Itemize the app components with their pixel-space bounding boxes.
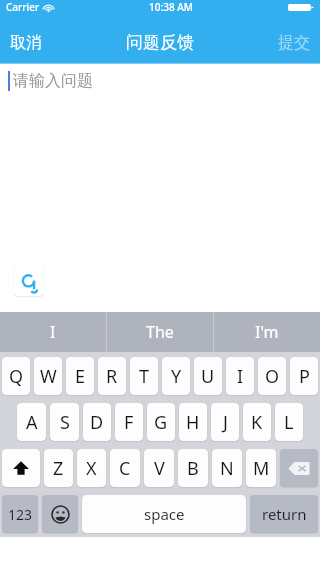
staticText: I xyxy=(50,321,56,343)
staticText: Z xyxy=(53,456,64,481)
staticText: W xyxy=(40,364,57,389)
button[interactable]: X xyxy=(77,449,106,487)
button[interactable]: E xyxy=(66,357,94,395)
button[interactable]: L xyxy=(275,403,303,441)
button[interactable]: B xyxy=(178,449,208,487)
staticText: S xyxy=(60,410,70,435)
staticText: Q xyxy=(9,364,24,389)
button[interactable]: H xyxy=(179,403,207,441)
button[interactable]: 提交 xyxy=(268,25,320,61)
button[interactable]: V xyxy=(144,449,174,487)
button[interactable]: W xyxy=(34,357,62,395)
staticText: H xyxy=(186,410,200,435)
button[interactable]: space xyxy=(82,495,246,533)
staticText: 取消 xyxy=(10,33,42,53)
button[interactable]: I'm xyxy=(214,312,320,352)
staticText: C xyxy=(119,456,131,481)
staticText: E xyxy=(75,364,86,389)
button[interactable]: N xyxy=(212,449,242,487)
staticText: 10:38 AM xyxy=(149,0,193,14)
button[interactable]: 123 xyxy=(2,495,38,533)
button[interactable]: Emoji xyxy=(42,495,78,533)
button[interactable]: I xyxy=(226,357,254,395)
staticText: The xyxy=(146,321,174,343)
staticText: 提交 xyxy=(278,33,310,53)
staticText: K xyxy=(251,410,263,435)
staticText: A xyxy=(26,410,38,435)
staticText: B xyxy=(187,456,199,481)
button[interactable]: Y xyxy=(162,357,190,395)
staticText: G xyxy=(154,410,168,435)
button[interactable]: O xyxy=(258,357,286,395)
button[interactable]: F xyxy=(115,403,143,441)
button[interactable]: U xyxy=(194,357,222,395)
staticText: D xyxy=(90,410,104,435)
staticText: U xyxy=(201,364,215,389)
button[interactable]: A xyxy=(17,403,46,441)
staticText: 请输入问题 xyxy=(13,71,93,91)
button[interactable]: P xyxy=(290,357,318,395)
button[interactable]: Z xyxy=(44,449,73,487)
button[interactable]: return xyxy=(250,495,318,533)
staticText: J xyxy=(223,410,228,435)
staticText: V xyxy=(154,456,165,481)
button[interactable]: J xyxy=(211,403,239,441)
staticText: P xyxy=(299,364,310,389)
button[interactable]: D xyxy=(83,403,111,441)
button[interactable]: Attach xyxy=(14,266,44,296)
staticText: F xyxy=(124,410,134,435)
button[interactable]: I xyxy=(0,312,106,352)
button[interactable]: The xyxy=(107,312,213,352)
button[interactable]: R xyxy=(98,357,126,395)
staticText: 123 xyxy=(8,505,33,524)
button[interactable]: G xyxy=(147,403,175,441)
staticText: R xyxy=(106,364,118,389)
staticText: M xyxy=(253,456,270,481)
staticText: L xyxy=(284,410,294,435)
button[interactable]: C xyxy=(110,449,140,487)
staticText: O xyxy=(265,364,280,389)
button[interactable]: Q xyxy=(2,357,30,395)
button[interactable]: K xyxy=(243,403,271,441)
button[interactable]: T xyxy=(130,357,158,395)
staticText: space xyxy=(144,504,185,524)
staticText: 问题反馈 xyxy=(126,32,194,53)
staticText: I'm xyxy=(255,321,279,343)
staticText: Y xyxy=(171,364,182,389)
button[interactable]: Delete xyxy=(280,449,318,487)
staticText: Carrier xyxy=(6,0,40,14)
button[interactable]: M xyxy=(246,449,276,487)
staticText: return xyxy=(262,504,307,524)
staticText: T xyxy=(139,364,150,389)
button[interactable]: S xyxy=(50,403,79,441)
button[interactable]: Shift xyxy=(2,449,40,487)
staticText: N xyxy=(220,456,234,481)
staticText: I xyxy=(237,364,244,389)
button[interactable]: 取消 xyxy=(0,25,52,61)
staticText: X xyxy=(86,456,97,481)
